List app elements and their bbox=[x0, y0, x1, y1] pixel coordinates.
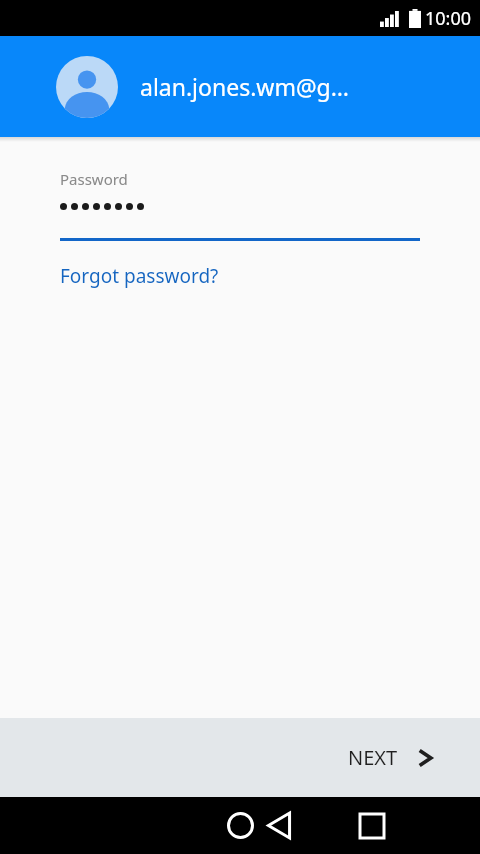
staticText: 10:00 bbox=[425, 6, 472, 31]
button[interactable]: alan.jones.wm@g… bbox=[0, 36, 480, 137]
button[interactable]: Recent apps bbox=[340, 797, 404, 854]
button[interactable]: Home bbox=[208, 797, 272, 854]
staticText: NEXT bbox=[348, 744, 398, 771]
button[interactable]: Back bbox=[78, 797, 480, 854]
button[interactable]: NEXT bbox=[320, 728, 480, 787]
button[interactable] bbox=[60, 203, 420, 241]
button[interactable]: Forgot password? bbox=[60, 263, 219, 289]
staticText: Password bbox=[60, 169, 128, 189]
staticText: Forgot password? bbox=[60, 263, 219, 289]
staticText: alan.jones.wm@g… bbox=[140, 71, 349, 102]
